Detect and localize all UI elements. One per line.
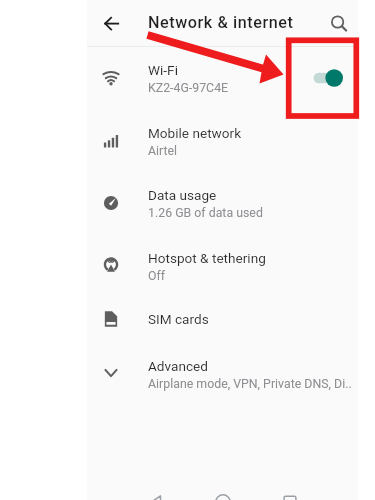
staticText: Data usage bbox=[148, 187, 217, 203]
button[interactable]: Data usage bbox=[87, 173, 358, 233]
button[interactable]: Mobile network bbox=[87, 111, 358, 171]
button[interactable]: Wi-Fi on/off bbox=[306, 62, 352, 94]
staticText: Off bbox=[148, 269, 166, 283]
staticText: Hotspot & tethering bbox=[148, 250, 266, 266]
button[interactable]: Hotspot & tethering bbox=[87, 235, 358, 295]
button[interactable]: Advanced bbox=[87, 343, 358, 403]
staticText: Wi-Fi bbox=[148, 62, 178, 78]
button[interactable]: Wi-Fi bbox=[87, 48, 358, 108]
staticText: Airplane mode, VPN, Private DNS, Di.. bbox=[148, 377, 352, 391]
staticText: SIM cards bbox=[148, 311, 209, 327]
button[interactable]: Recent apps bbox=[279, 488, 301, 500]
button[interactable]: Back bbox=[145, 488, 167, 500]
staticText: KZ2-4G-97C4E bbox=[148, 81, 229, 95]
button[interactable]: Search bbox=[325, 10, 351, 36]
staticText: Advanced bbox=[148, 358, 208, 374]
staticText: Airtel bbox=[148, 144, 178, 158]
staticText: 1.26 GB of data used bbox=[148, 206, 263, 220]
staticText: Network & internet bbox=[148, 13, 294, 32]
button[interactable]: SIM cards bbox=[87, 289, 358, 349]
button[interactable]: Home bbox=[212, 488, 234, 500]
staticText: Mobile network bbox=[148, 125, 242, 141]
button[interactable]: Back bbox=[99, 11, 124, 36]
